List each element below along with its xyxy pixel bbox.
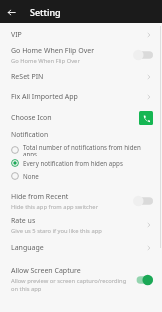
button[interactable]: ReSet PIN [0, 67, 162, 87]
staticText: Hide from Recent [11, 192, 69, 202]
staticText: Allow Screen Capture [11, 266, 81, 276]
staticText: ReSet PIN [11, 72, 44, 82]
staticText: Go Home When Flip Over [11, 57, 80, 65]
button[interactable] [133, 274, 153, 286]
staticText: Give us 5 staro if you like this app [11, 227, 102, 235]
staticText: None [23, 172, 39, 180]
button[interactable]: Go Home When Flip Over [0, 43, 162, 67]
staticText: Rate us [11, 216, 36, 226]
button[interactable] [133, 49, 153, 61]
staticText: Language [11, 243, 44, 253]
button[interactable]: VIP [0, 26, 162, 43]
button[interactable]: Fix All Imported App [0, 87, 162, 107]
staticText: Total number of notifications from hiden… [23, 143, 153, 156]
staticText: Setting [30, 6, 61, 18]
staticText: Allow preview or screen capturo/recordin… [11, 277, 129, 293]
staticText: Fix All Imported App [11, 92, 78, 102]
staticText: VIP [11, 30, 22, 40]
button[interactable]: Choose Icon [139, 111, 153, 125]
button[interactable]: Hide from Recent [0, 189, 162, 213]
button[interactable]: Choose Icon [0, 107, 162, 128]
button[interactable]: None [0, 169, 162, 182]
staticText: Notification [11, 130, 49, 139]
staticText: Every notification from hiden apps [23, 159, 123, 167]
button[interactable] [133, 195, 153, 207]
button[interactable]: Language [0, 237, 162, 259]
staticText: Choose Icon [11, 113, 52, 123]
button[interactable]: Allow Screen Capture [0, 263, 162, 296]
button[interactable]: Total number of notifications from hiden… [0, 143, 162, 156]
staticText: Go Home When Flip Over [11, 46, 95, 56]
button[interactable]: Rate us [0, 213, 162, 237]
button[interactable]: Back [0, 1, 22, 23]
staticText: Hide this app from app switcher [11, 203, 99, 211]
button[interactable]: Every notification from hiden apps [0, 156, 162, 169]
